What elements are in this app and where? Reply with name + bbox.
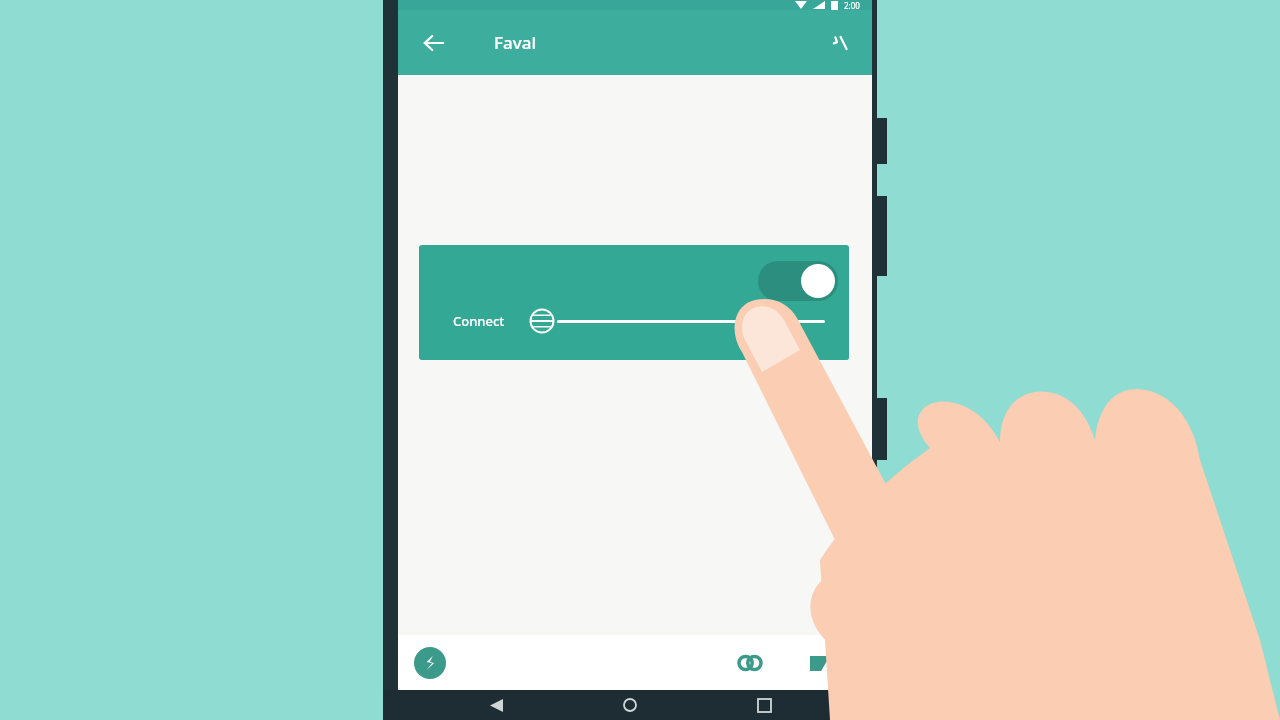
button[interactable]: Tag [802, 645, 838, 681]
button[interactable]: Contacts [732, 645, 768, 681]
button[interactable]: Recents [747, 690, 781, 720]
button[interactable]: Add [414, 647, 446, 679]
staticText: Connect [453, 312, 505, 330]
button[interactable]: Back [412, 21, 456, 65]
staticText: 2:00 [844, 0, 860, 10]
button[interactable]: Home [613, 690, 647, 720]
button[interactable]: More options [820, 22, 862, 64]
button[interactable]: Toggle [756, 259, 840, 303]
staticText: Faval [494, 31, 536, 54]
button[interactable]: Toggle [419, 245, 849, 360]
button[interactable]: Back [479, 690, 513, 720]
